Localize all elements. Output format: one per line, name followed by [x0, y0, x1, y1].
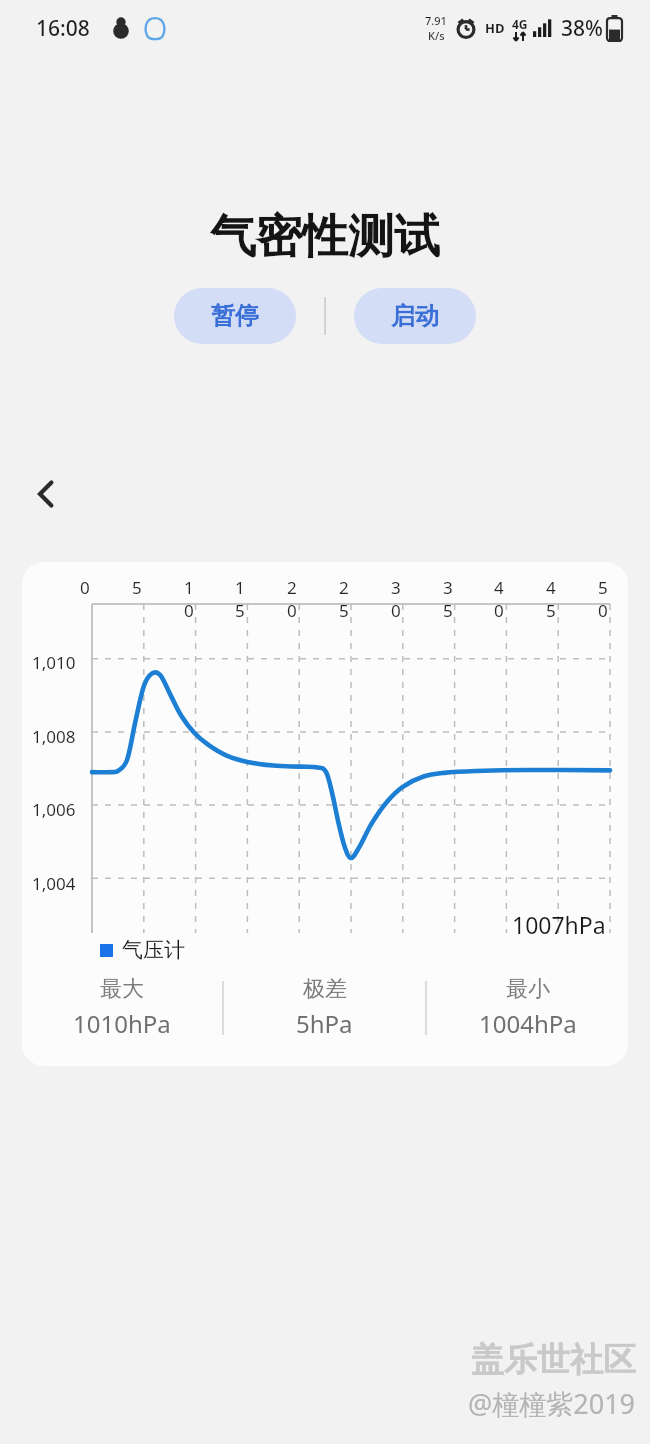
button[interactable]: 暂停	[174, 288, 296, 344]
staticText: 1010hPa	[73, 1007, 171, 1040]
staticText: 盖乐世社区	[471, 1339, 636, 1381]
staticText: 1,004	[32, 872, 76, 895]
button[interactable]: Back	[18, 466, 74, 522]
staticText: 启动	[391, 301, 439, 331]
staticText: 气密性测试	[210, 208, 440, 266]
staticText: 最大	[100, 975, 144, 1003]
button[interactable]: 启动	[354, 288, 476, 344]
staticText: 极差	[303, 975, 347, 1003]
staticText: 暂停	[211, 301, 259, 331]
button[interactable]: 最小	[427, 975, 628, 1040]
staticText: 最小	[506, 975, 550, 1003]
button[interactable]: 最大	[22, 975, 222, 1040]
staticText: 4G	[512, 16, 528, 32]
button[interactable]: 极差	[224, 975, 425, 1040]
staticText: 1,006	[32, 798, 76, 821]
staticText: HD	[485, 19, 505, 37]
staticText: 7.91	[425, 13, 447, 28]
staticText: 1004hPa	[479, 1007, 577, 1040]
button[interactable]: 0	[22, 562, 628, 1066]
staticText: K/s	[428, 28, 445, 43]
staticText: @橦橦紫2019	[468, 1385, 636, 1422]
staticText: 38%	[561, 14, 603, 43]
staticText: 1,008	[32, 725, 76, 748]
staticText: 气压计	[122, 937, 185, 963]
staticText: 1007hPa	[512, 909, 606, 940]
staticText: 5hPa	[296, 1007, 353, 1040]
staticText: 1,010	[32, 651, 76, 674]
staticText: 16:08	[36, 14, 90, 43]
